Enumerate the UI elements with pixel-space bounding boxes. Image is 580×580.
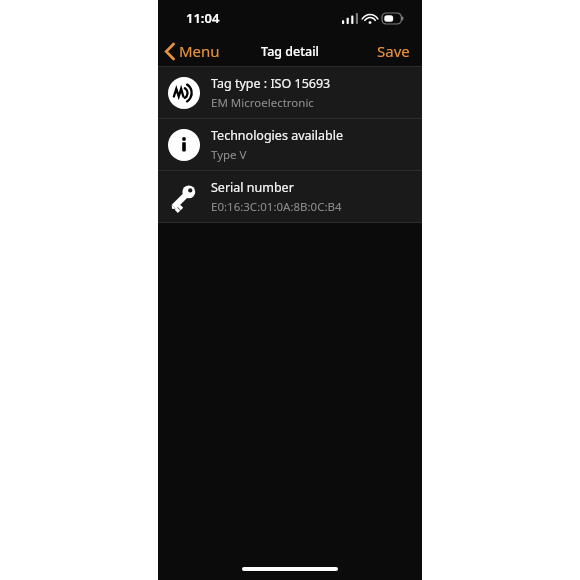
other: Serial number [168,181,200,213]
button[interactable]: Save [365,36,422,66]
staticText: E0:16:3C:01:0A:8B:0C:B4 [211,199,342,215]
staticText: Type V [211,147,247,163]
staticText: Technologies available [211,127,343,144]
button[interactable]: NFC tag type [158,67,422,118]
staticText: Serial number [211,179,294,196]
other: NFC tag type [168,77,200,109]
staticText: Tag type : ISO 15693 [211,75,331,92]
staticText: 11:04 [186,9,220,27]
button[interactable]: Menu [158,36,228,66]
button[interactable]: Serial number [158,171,422,222]
button[interactable]: Technologies available [158,119,422,170]
staticText: Menu [179,41,220,61]
staticText: EM Microelectronic [211,95,314,111]
staticText: Tag detail [261,43,319,60]
other: Technologies available [168,129,200,161]
staticText: Save [377,41,410,61]
